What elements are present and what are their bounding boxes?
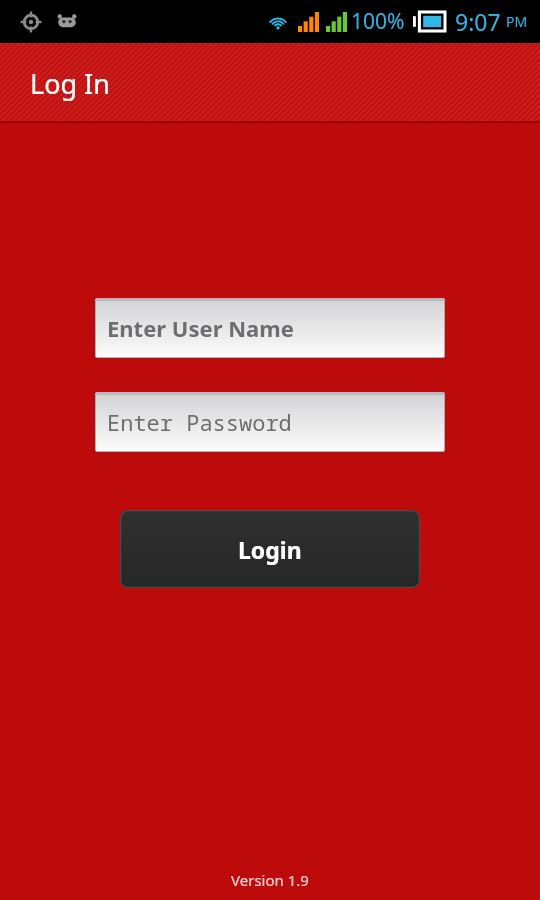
staticText: PM	[506, 12, 528, 31]
button[interactable]: Enter User Name	[95, 298, 445, 358]
staticText: Log In	[30, 65, 110, 102]
staticText: Login	[238, 534, 302, 565]
staticText: Enter Password	[107, 407, 292, 437]
button[interactable]: Login	[120, 510, 420, 588]
staticText: Version 1.9	[0, 870, 540, 890]
staticText: 9:07	[455, 6, 501, 37]
button[interactable]: Enter Password	[95, 392, 445, 452]
staticText: 100%	[351, 7, 405, 36]
staticText: Enter User Name	[107, 313, 294, 343]
